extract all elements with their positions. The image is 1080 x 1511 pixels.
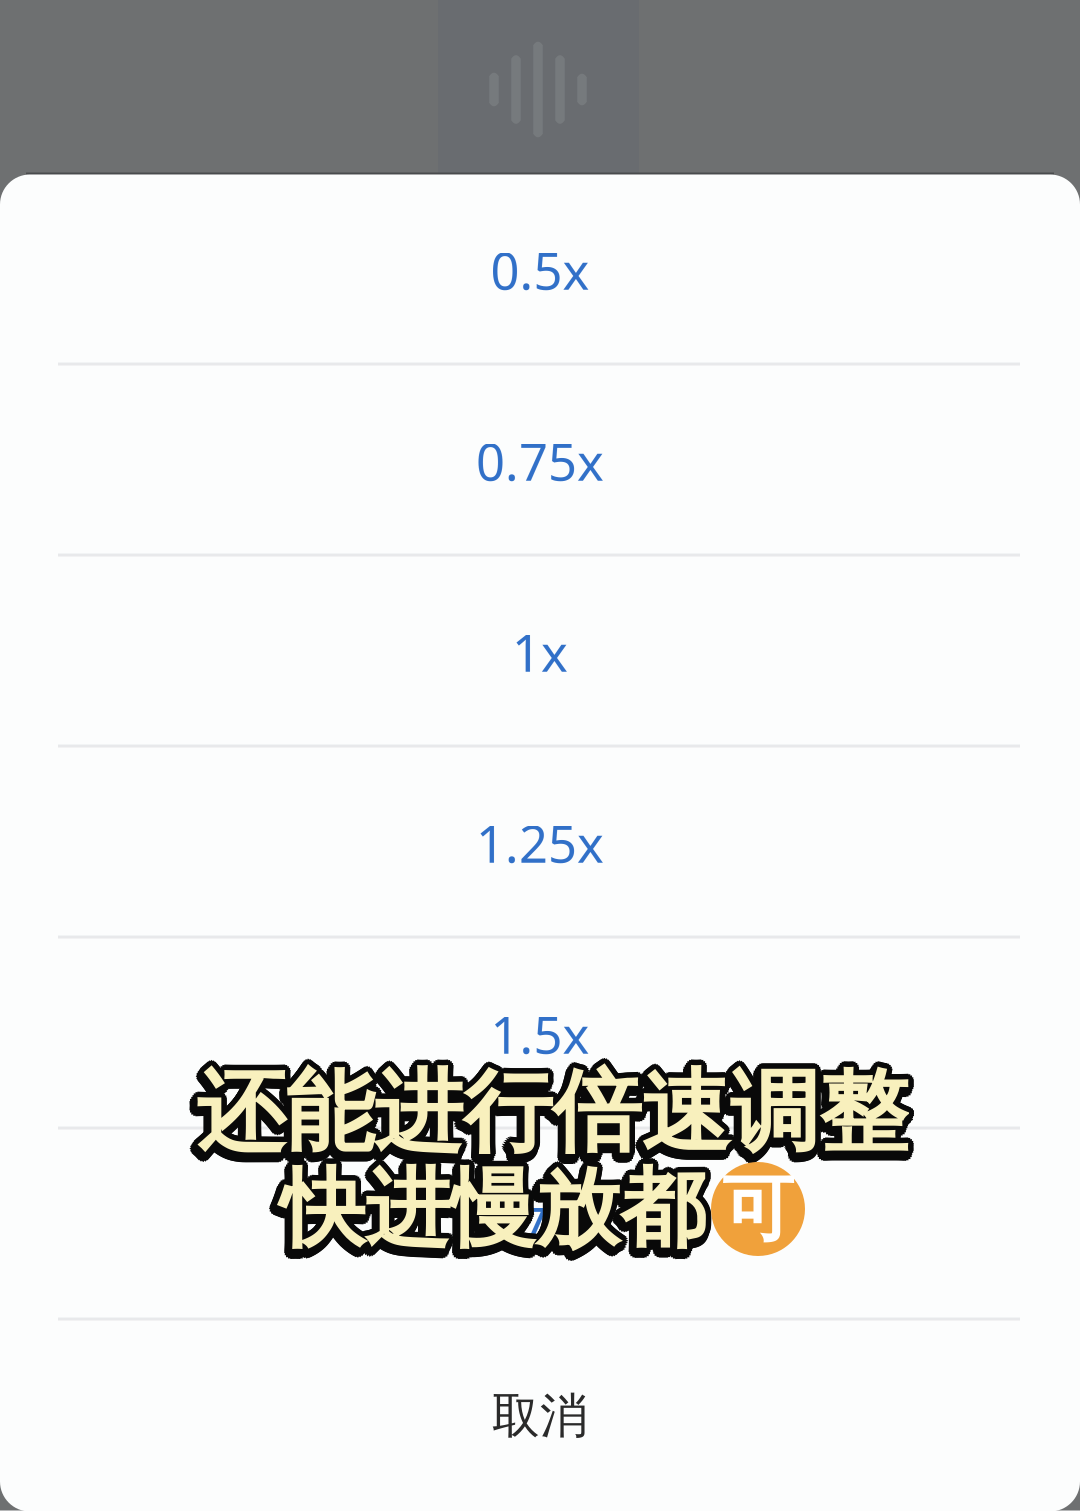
- button[interactable]: 1x: [0, 556, 1080, 747]
- staticText: 1.75x: [476, 1191, 604, 1259]
- staticText: 1x: [512, 618, 568, 686]
- staticText: 0.75x: [476, 427, 604, 495]
- button[interactable]: 0.75x: [0, 365, 1080, 556]
- button[interactable]: 0.5x: [0, 174, 1080, 365]
- staticText: 取消: [492, 1386, 588, 1445]
- button[interactable]: 1.5x: [0, 938, 1080, 1129]
- button[interactable]: 取消: [0, 1320, 1080, 1511]
- staticText: 1.5x: [490, 1000, 589, 1068]
- button[interactable]: 1.75x: [0, 1129, 1080, 1320]
- staticText: 0.5x: [490, 236, 589, 304]
- button[interactable]: Dismiss: [0, 0, 1080, 1510]
- staticText: 快进慢放都: [280, 1157, 705, 1261]
- staticText: 1.25x: [476, 809, 604, 877]
- button[interactable]: 1.25x: [0, 747, 1080, 938]
- staticText: 可: [722, 1165, 794, 1253]
- staticText: 还能进行倍速调整: [196, 1058, 908, 1167]
